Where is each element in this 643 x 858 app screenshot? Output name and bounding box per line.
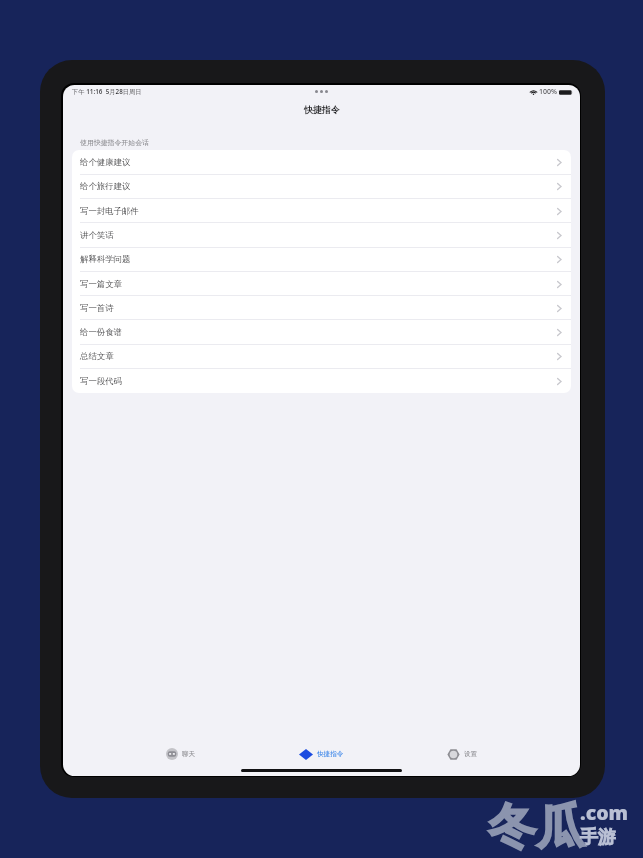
staticText: 快捷指令 <box>304 104 340 115</box>
button[interactable]: 给个旅行建议 <box>72 174 571 198</box>
staticText: 写一封电子邮件 <box>80 206 139 217</box>
button[interactable]: 写一段代码 <box>72 369 571 393</box>
staticText: 解释科学问题 <box>80 254 131 265</box>
staticText: 给一份食谱 <box>80 327 122 338</box>
staticText: 写一段代码 <box>80 376 122 387</box>
button[interactable]: 解释科学问题 <box>72 247 571 271</box>
staticText: .com <box>580 799 629 826</box>
button[interactable]: 写一封电子邮件 <box>72 199 571 223</box>
button[interactable]: 写一篇文章 <box>72 272 571 296</box>
button[interactable]: 总结文章 <box>72 344 571 368</box>
staticText: 写一首诗 <box>80 303 114 314</box>
staticText: 手游 <box>580 826 616 849</box>
button[interactable]: 给个健康建议 <box>72 150 571 174</box>
staticText: 写一篇文章 <box>80 279 122 290</box>
staticText: 100% <box>539 87 557 97</box>
button[interactable]: 设置 <box>392 746 533 762</box>
staticText: 给个健康建议 <box>80 157 131 168</box>
staticText: 快捷指令 <box>317 750 344 758</box>
staticText: 下午 11:16 5月28日周日 <box>72 87 142 96</box>
staticText: 给个旅行建议 <box>80 181 131 192</box>
button[interactable]: 聊天 <box>110 746 251 762</box>
button[interactable]: 写一首诗 <box>72 296 571 320</box>
staticText: 冬瓜 <box>488 797 584 857</box>
staticText: 讲个笑话 <box>80 230 114 241</box>
button[interactable]: 讲个笑话 <box>72 223 571 247</box>
staticText: 总结文章 <box>80 351 114 362</box>
button[interactable]: 给一份食谱 <box>72 320 571 344</box>
button[interactable]: 快捷指令 <box>251 746 392 762</box>
staticText: 使用快捷指令开始会话 <box>80 138 149 147</box>
staticText: 聊天 <box>182 750 196 758</box>
staticText: 设置 <box>464 750 478 758</box>
